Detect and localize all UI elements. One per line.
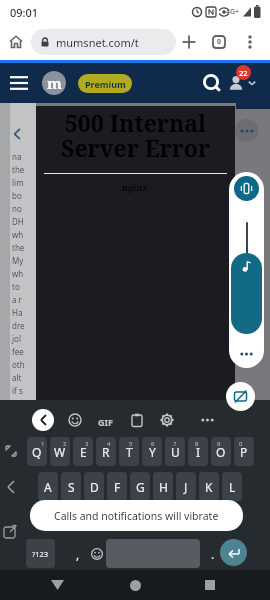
button[interactable] — [8, 72, 30, 94]
button[interactable]: 0 — [208, 31, 230, 53]
button[interactable] — [64, 409, 86, 431]
staticText: F — [114, 479, 121, 495]
staticText: I — [196, 444, 201, 460]
staticText: oth — [12, 359, 25, 370]
staticText: jol — [12, 333, 21, 344]
staticText: L — [229, 479, 236, 495]
button[interactable]: F — [107, 472, 127, 501]
button[interactable]: , — [66, 539, 90, 568]
staticText: D — [90, 479, 99, 495]
button[interactable] — [235, 119, 258, 142]
button[interactable] — [124, 574, 146, 596]
staticText: 9 — [217, 440, 221, 448]
button[interactable] — [241, 33, 259, 51]
staticText: 2 — [63, 440, 67, 448]
button[interactable] — [126, 409, 148, 431]
button[interactable] — [220, 539, 247, 566]
button[interactable] — [178, 31, 200, 53]
staticText: My — [12, 255, 24, 266]
staticText: E — [80, 444, 87, 460]
staticText: Premium — [85, 78, 126, 90]
button[interactable] — [86, 539, 108, 568]
button[interactable]: R — [96, 437, 116, 466]
button[interactable]: J — [176, 472, 196, 501]
staticText: P — [240, 444, 248, 460]
button[interactable]: A — [38, 472, 58, 501]
staticText: S — [68, 479, 75, 495]
staticText: O — [216, 444, 226, 460]
button[interactable] — [8, 125, 26, 143]
staticText: 4 — [107, 440, 111, 448]
staticText: A — [44, 479, 52, 495]
button[interactable]: Q — [27, 437, 47, 466]
button[interactable] — [201, 72, 223, 94]
button[interactable]: T — [119, 437, 139, 466]
staticText: 3 — [85, 440, 89, 448]
button[interactable]: m — [42, 71, 66, 95]
staticText: a r — [12, 294, 22, 305]
staticText: if s — [12, 385, 23, 396]
button[interactable]: S — [61, 472, 81, 501]
button[interactable]: . — [202, 539, 224, 568]
button[interactable] — [199, 574, 221, 596]
button[interactable]: P — [234, 437, 254, 466]
staticText: fee — [12, 346, 24, 357]
button[interactable]: O — [211, 437, 231, 466]
staticText: , — [76, 546, 80, 562]
button[interactable]: H — [153, 472, 173, 501]
staticText: the — [12, 164, 25, 175]
button[interactable]: Y — [142, 437, 162, 466]
button[interactable] — [156, 409, 178, 431]
staticText: U — [171, 444, 180, 460]
staticText: 0 — [239, 440, 243, 448]
staticText: 8 — [195, 440, 199, 448]
staticText: lim — [12, 177, 24, 188]
button[interactable]: E — [73, 437, 93, 466]
staticText: the — [12, 242, 25, 253]
button[interactable] — [240, 352, 253, 356]
staticText: nginx — [122, 181, 149, 193]
staticText: 7 — [173, 440, 177, 448]
staticText: GIF — [98, 416, 113, 428]
staticText: Y — [149, 444, 156, 460]
button[interactable]: ?123 — [26, 539, 55, 568]
button[interactable]: U — [165, 437, 185, 466]
staticText: Q — [32, 444, 42, 460]
button[interactable]: I — [188, 437, 208, 466]
button[interactable] — [196, 409, 218, 431]
button[interactable]: G — [130, 472, 150, 501]
button[interactable]: K — [199, 472, 219, 501]
staticText: Calls and notifications will vibrate — [54, 509, 219, 523]
button[interactable]: Premium — [78, 74, 132, 93]
staticText: m — [47, 73, 62, 93]
button[interactable]: GIF — [92, 409, 118, 435]
button[interactable]: D — [84, 472, 104, 501]
staticText: dre — [12, 320, 25, 331]
staticText: 5 — [129, 440, 133, 448]
staticText: alt — [12, 372, 22, 383]
staticText: wh — [12, 229, 24, 240]
button[interactable]: L — [222, 472, 242, 501]
button[interactable] — [226, 382, 255, 411]
button[interactable] — [226, 66, 260, 100]
staticText: G — [136, 479, 145, 495]
staticText: 0 — [217, 37, 222, 47]
staticText: ?123 — [32, 549, 49, 559]
staticText: 4G+ — [226, 7, 240, 17]
staticText: bo — [12, 190, 22, 201]
staticText: DH — [12, 216, 24, 227]
button[interactable] — [46, 574, 68, 596]
button[interactable] — [32, 409, 54, 431]
staticText: W — [54, 444, 66, 460]
staticText: 6 — [151, 440, 155, 448]
button[interactable]: W — [50, 437, 70, 466]
staticText: 500 Internal Server Error — [61, 107, 210, 164]
staticText: K — [205, 479, 213, 495]
button[interactable] — [234, 176, 259, 201]
button[interactable]: mumsnet.com/t — [31, 29, 176, 55]
staticText: na — [12, 151, 22, 162]
button[interactable] — [231, 253, 262, 334]
staticText: T — [126, 444, 133, 460]
staticText: wh — [12, 268, 24, 279]
